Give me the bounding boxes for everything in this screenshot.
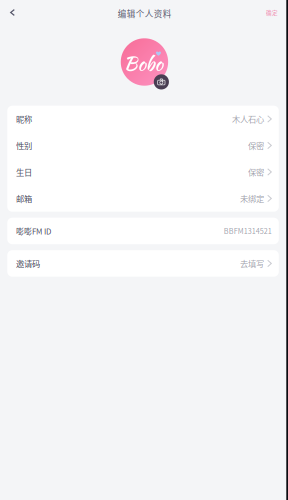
staticText: 生日: [16, 166, 32, 178]
button[interactable]: 确定: [263, 4, 281, 20]
button[interactable]: 昵称: [7, 106, 279, 132]
button[interactable]: 生日: [7, 159, 279, 185]
staticText: 邀请码: [16, 257, 40, 269]
staticText: 确定: [266, 8, 278, 16]
staticText: 编辑个人资料: [118, 7, 172, 20]
button[interactable]: Change avatar: [104, 38, 184, 86]
staticText: BBFM1314521: [224, 226, 272, 236]
staticText: 未绑定: [240, 192, 264, 204]
button[interactable]: 嘭嘭FM ID: [7, 218, 279, 244]
staticText: 去填写: [240, 257, 264, 269]
staticText: 木人石心: [232, 113, 264, 125]
button[interactable]: 性别: [7, 132, 279, 159]
button[interactable]: Back: [1, 1, 23, 23]
button[interactable]: 邮箱: [7, 185, 279, 212]
staticText: 保密: [248, 139, 264, 151]
staticText: Bobo: [123, 50, 162, 77]
staticText: 嘭嘭FM ID: [16, 225, 51, 237]
staticText: 保密: [248, 166, 264, 178]
staticText: 邮箱: [16, 192, 32, 204]
staticText: 昵称: [16, 113, 32, 125]
button[interactable]: 邀请码: [7, 250, 279, 277]
staticText: 性别: [16, 139, 32, 151]
